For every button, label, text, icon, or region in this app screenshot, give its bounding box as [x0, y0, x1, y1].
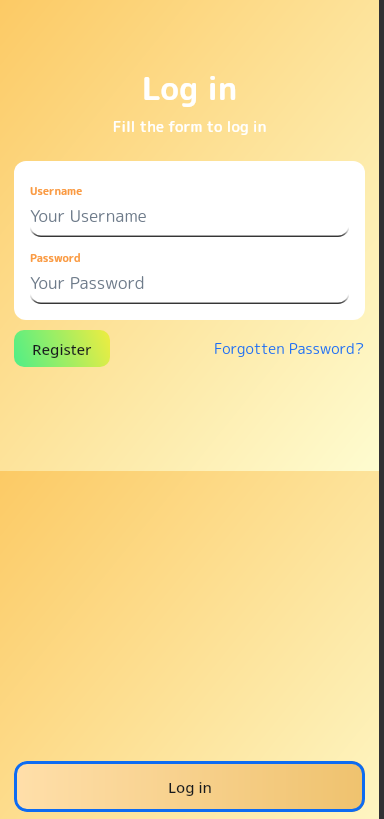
staticText: Your Password [30, 271, 145, 295]
staticText: Log in [0, 66, 379, 111]
button[interactable]: Log in [14, 761, 365, 812]
staticText: Username [30, 183, 83, 198]
button[interactable]: Register [14, 330, 110, 367]
staticText: Forgotten Password? [214, 338, 365, 359]
button[interactable]: Username [30, 187, 349, 237]
staticText: Your Username [30, 204, 147, 228]
button[interactable]: Forgotten Password? [214, 338, 365, 359]
button[interactable]: Password [30, 254, 349, 304]
staticText: Fill the form to log in [0, 116, 379, 137]
staticText: Register [32, 339, 92, 359]
staticText: Password [30, 250, 81, 265]
staticText: Log in [168, 777, 212, 797]
